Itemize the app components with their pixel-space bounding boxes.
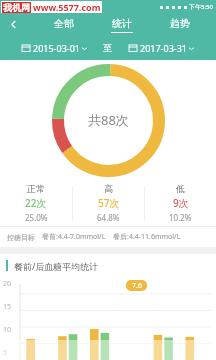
staticText: 趋势 (170, 17, 190, 30)
staticText: 下午5:50 (189, 3, 213, 11)
staticText: 2017-03-31 (140, 42, 187, 54)
staticText: 25.0% (25, 212, 48, 223)
staticText: 我机网 (3, 2, 30, 13)
staticText: 15 (3, 302, 12, 312)
staticText: 餐前:4.4-7.0mmol/L (42, 232, 106, 242)
staticText: 10.2% (169, 212, 192, 223)
staticText: 64.8% (97, 212, 120, 223)
staticText: 9次 (173, 196, 189, 210)
staticText: 低 (176, 183, 185, 194)
button[interactable]: 2017-03-31 (112, 42, 210, 54)
staticText: 高 (104, 183, 113, 194)
staticText: 正常 (27, 183, 45, 194)
staticText: 统计 (112, 17, 132, 30)
staticText: 餐前/后血糖平均统计 (14, 260, 99, 272)
staticText: www.5577.com (33, 1, 101, 13)
staticText: 5 (3, 348, 8, 358)
button[interactable]: 趋势 (164, 17, 196, 33)
staticText: 控糖目标 (7, 233, 35, 242)
staticText: 57次 (98, 196, 120, 210)
button[interactable]: 全部 (48, 17, 80, 33)
staticText: 20 (3, 279, 12, 289)
button[interactable]: 低 (145, 183, 216, 223)
button[interactable]: 统计 (106, 17, 138, 33)
button[interactable]: 正常 (0, 183, 72, 223)
staticText: 至 (103, 42, 112, 53)
button[interactable]: 高 (73, 183, 144, 223)
staticText: 2015-03-01 (33, 42, 80, 54)
staticText: 7.6 (132, 281, 142, 291)
button[interactable]: Back (0, 14, 26, 35)
staticText: 10 (3, 325, 12, 335)
staticText: 全部 (54, 17, 74, 30)
staticText: 22次 (25, 196, 47, 210)
staticText: 共88次 (88, 111, 129, 129)
staticText: 餐后:4.4-11.6mmol/L (113, 232, 181, 242)
button[interactable]: 2015-03-01 (6, 42, 103, 54)
